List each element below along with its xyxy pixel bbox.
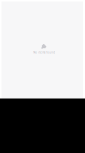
staticText: No items found bbox=[33, 51, 55, 54]
